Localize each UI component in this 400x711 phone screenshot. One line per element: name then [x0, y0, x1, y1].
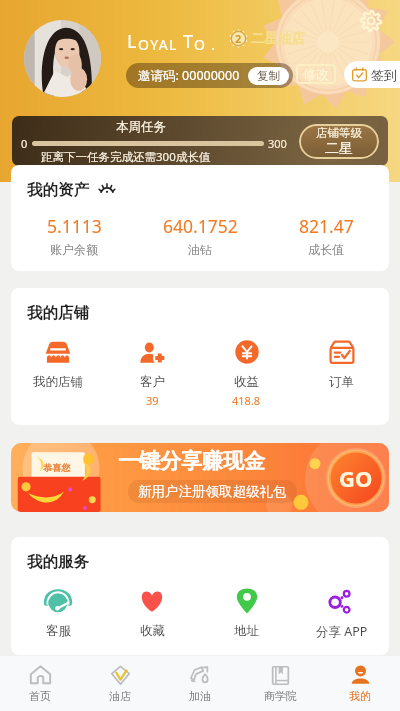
- button[interactable]: 5.1113: [11, 214, 137, 257]
- staticText: 复制: [257, 69, 280, 83]
- staticText: 油店: [109, 689, 131, 703]
- staticText: T: [183, 29, 194, 54]
- button[interactable]: 821.47: [263, 214, 389, 257]
- staticText: 我的资产: [27, 180, 89, 200]
- staticText: 418.8: [232, 393, 261, 408]
- staticText: O .: [194, 35, 217, 54]
- staticText: 0: [21, 136, 28, 151]
- staticText: 2: [235, 31, 242, 46]
- staticText: 新用户注册领取超级礼包: [138, 483, 287, 500]
- staticText: 签到: [371, 67, 397, 83]
- staticText: GO: [339, 463, 373, 493]
- staticText: 客户: [140, 374, 165, 390]
- staticText: 我的店铺: [27, 303, 89, 323]
- button[interactable]: 店铺等级: [299, 124, 379, 159]
- button[interactable]: 分享 APP: [294, 586, 389, 640]
- button[interactable]: 客户: [105, 337, 199, 408]
- button[interactable]: 邀请码: 00000000: [138, 63, 289, 88]
- staticText: 300: [268, 136, 287, 151]
- button[interactable]: 首页: [0, 656, 80, 711]
- staticText: 收益: [234, 374, 259, 390]
- staticText: 地址: [234, 623, 259, 639]
- staticText: 本周任务: [116, 119, 166, 135]
- staticText: 商学院: [264, 689, 297, 703]
- staticText: 39: [146, 393, 159, 408]
- button[interactable]: 收藏: [105, 586, 199, 639]
- button[interactable]: Settings: [360, 10, 382, 32]
- staticText: OYAL: [138, 35, 178, 54]
- staticText: 成长值: [308, 242, 344, 257]
- staticText: 修改: [303, 66, 329, 82]
- staticText: 一键分享赚现金: [118, 448, 265, 474]
- button[interactable]: 地址: [199, 586, 294, 639]
- button[interactable]: 订单: [294, 337, 389, 390]
- button[interactable]: 我的: [320, 656, 400, 711]
- button[interactable]: 加油: [160, 656, 240, 711]
- button[interactable]: 收益: [199, 337, 294, 408]
- staticText: 我的: [349, 689, 371, 703]
- button[interactable]: 签到: [352, 61, 397, 88]
- button[interactable]: 客服: [11, 586, 105, 639]
- staticText: 我的店铺: [33, 374, 83, 390]
- button[interactable]: Avatar: [24, 20, 101, 97]
- staticText: 5.1113: [47, 214, 102, 238]
- staticText: 二星油店: [251, 30, 305, 47]
- button[interactable]: Hide amounts: [98, 181, 116, 199]
- button[interactable]: 商学院: [240, 656, 320, 711]
- staticText: 分享 APP: [316, 623, 368, 640]
- staticText: 恭喜您: [43, 462, 70, 473]
- staticText: 邀请码: 00000000: [138, 67, 240, 84]
- staticText: 距离下一任务完成还需300成长值: [41, 149, 211, 165]
- staticText: 我的服务: [27, 552, 89, 572]
- staticText: 客服: [46, 623, 71, 639]
- staticText: 640.1752: [163, 214, 238, 238]
- staticText: 821.47: [299, 214, 354, 238]
- staticText: 首页: [29, 689, 51, 703]
- staticText: 收藏: [140, 623, 165, 639]
- staticText: 账户余额: [50, 242, 98, 257]
- button[interactable]: 修改: [303, 66, 329, 82]
- button[interactable]: 640.1752: [137, 214, 263, 257]
- button[interactable]: 我的店铺: [11, 337, 105, 390]
- staticText: 加油: [189, 689, 211, 703]
- staticText: 二星: [325, 140, 353, 158]
- staticText: 订单: [329, 374, 354, 390]
- staticText: L: [127, 29, 138, 54]
- button[interactable]: 油店: [80, 656, 160, 711]
- button[interactable]: GO: [326, 448, 386, 508]
- button[interactable]: 恭喜您: [11, 443, 389, 512]
- staticText: 店铺等级: [316, 126, 362, 140]
- staticText: 油钻: [188, 242, 212, 257]
